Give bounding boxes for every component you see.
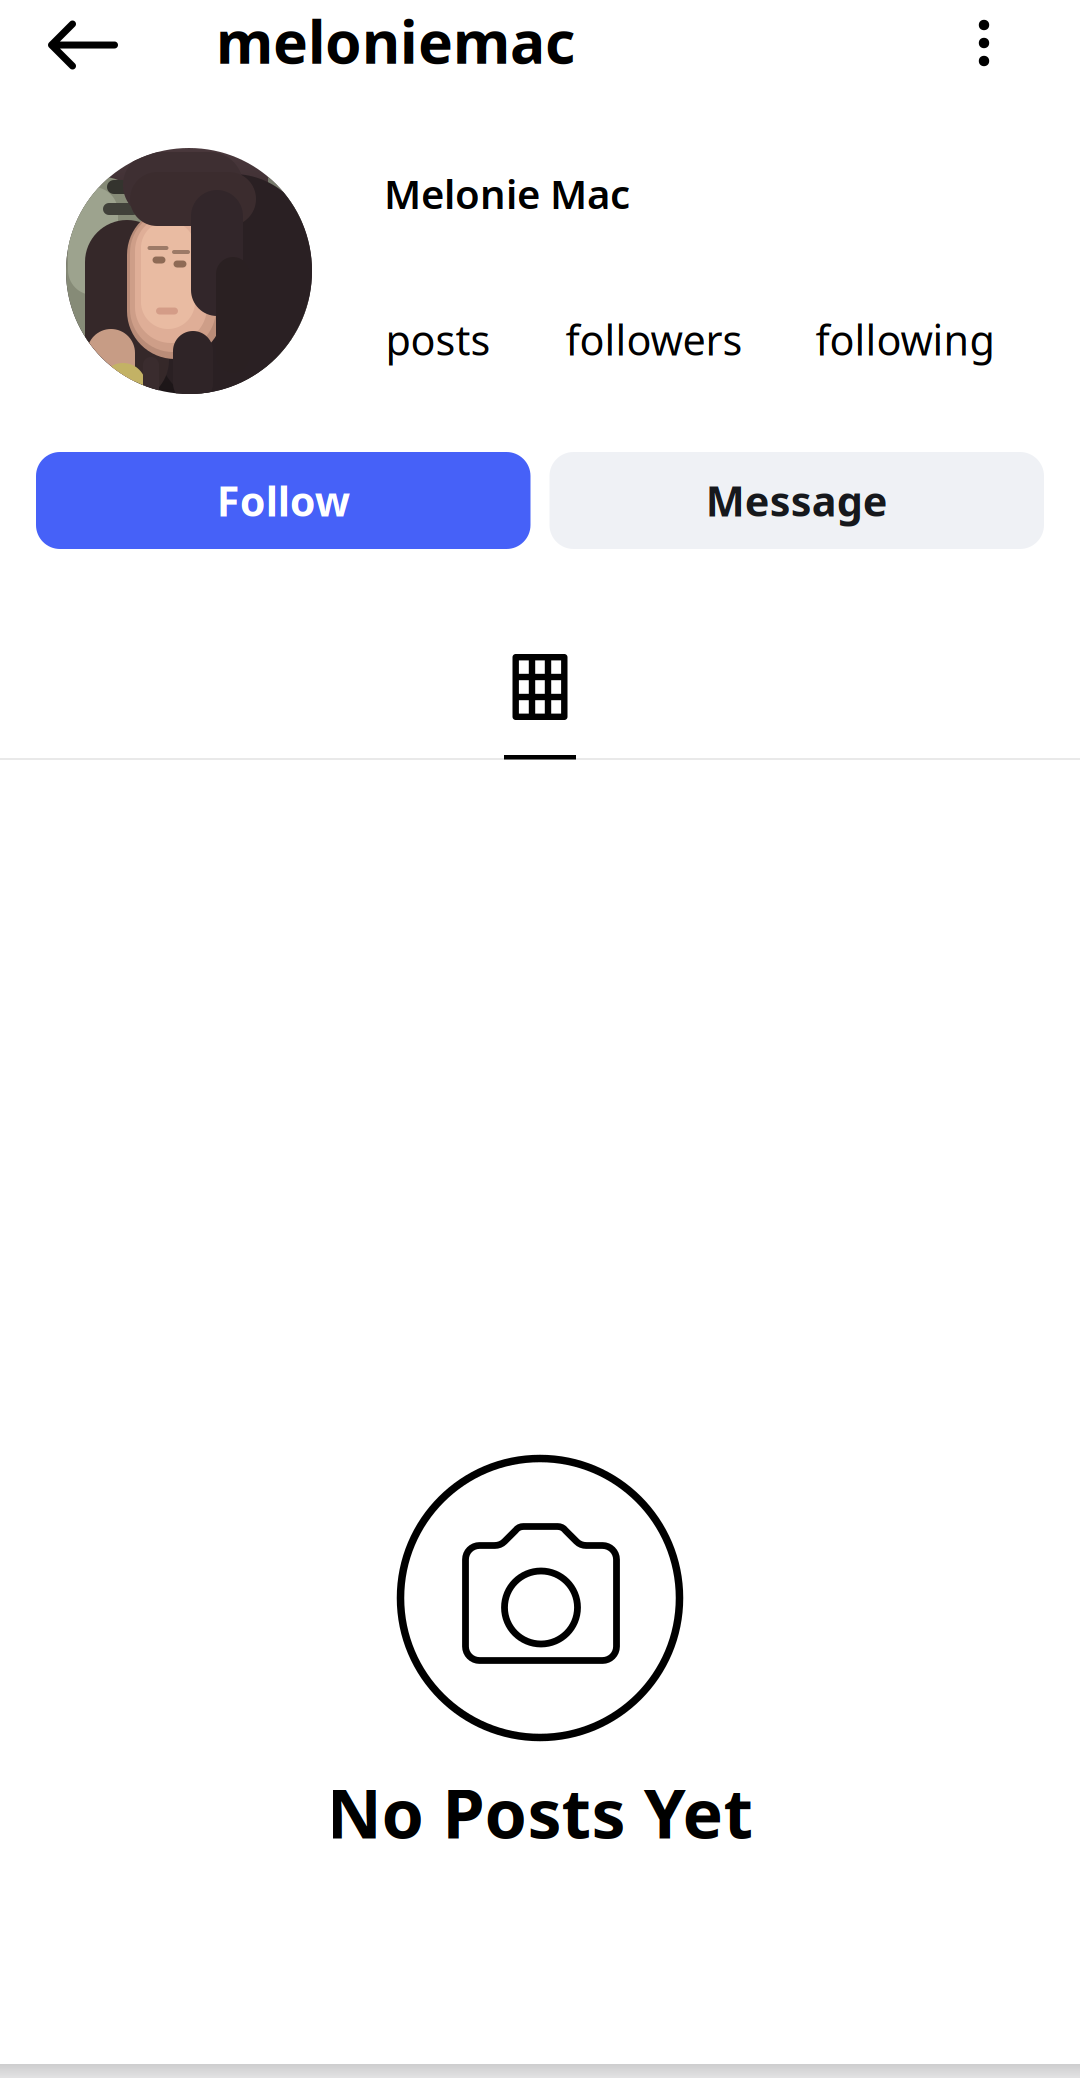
button[interactable]: Posts grid [432, 654, 648, 762]
staticText: following [815, 312, 994, 367]
staticText: Message [706, 473, 888, 528]
button[interactable]: Message [549, 452, 1044, 549]
button[interactable]: Back [24, 0, 142, 90]
staticText: Melonie Mac [384, 167, 630, 220]
staticText: Follow [217, 473, 350, 528]
button[interactable]: Follow [36, 452, 530, 549]
staticText: followers [565, 312, 742, 367]
staticText: meloniemac [216, 2, 575, 80]
staticText: No Posts Yet [326, 1767, 753, 1857]
staticText: posts [385, 312, 490, 367]
button[interactable]: More options [936, 0, 1032, 88]
